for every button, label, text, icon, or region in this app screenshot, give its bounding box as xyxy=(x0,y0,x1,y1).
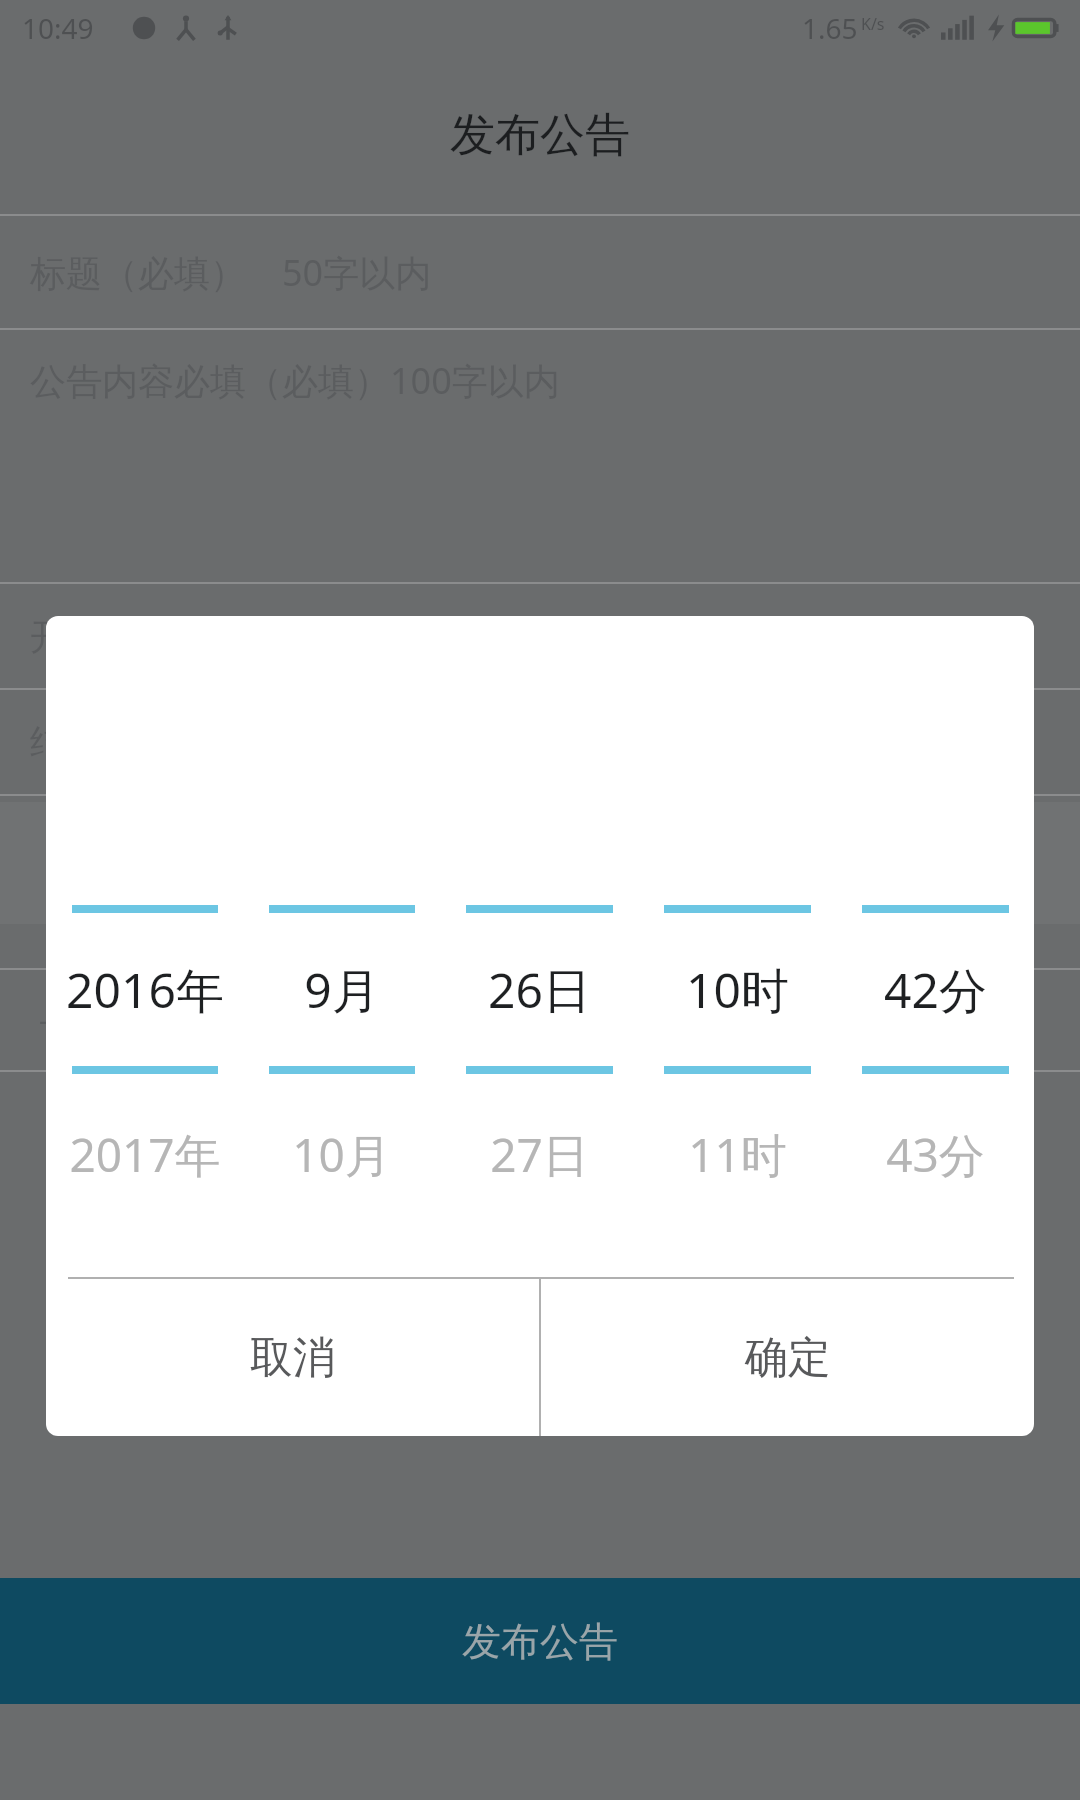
button[interactable]: 公司全部人员 xyxy=(241,1106,545,1160)
staticText: 自定义 xyxy=(687,1109,804,1158)
staticText: 9月 xyxy=(304,957,380,1023)
staticText: 10月 xyxy=(292,1123,391,1186)
button[interactable]: 10时 xyxy=(638,616,836,1277)
other: Messages xyxy=(130,14,158,42)
staticText: 接收人 xyxy=(78,1109,195,1158)
staticText: 发布公告 xyxy=(462,1617,618,1666)
button[interactable]: 2016年 xyxy=(46,616,243,1277)
staticText: 10时 xyxy=(686,957,789,1023)
button[interactable]: 确定 xyxy=(541,1279,1034,1436)
staticText: 取消 xyxy=(250,1331,336,1385)
button[interactable]: 取消 xyxy=(46,1279,539,1436)
staticText: 标题（必填） 50字以内 xyxy=(30,248,432,297)
staticText: 2016年 xyxy=(66,957,224,1023)
staticText: 27日 xyxy=(490,1123,589,1186)
staticText: 43分 xyxy=(886,1123,985,1186)
button[interactable]: 自定义 xyxy=(617,1106,804,1160)
staticText: 42分 xyxy=(884,957,987,1023)
staticText: 公告内容必填（必填）100字以内 xyxy=(30,356,560,405)
staticText: 公司全部人员 xyxy=(311,1109,545,1158)
staticText: － xyxy=(30,998,66,1043)
staticText: 确定 xyxy=(745,1331,831,1385)
button[interactable]: 9月 xyxy=(243,616,440,1277)
staticText: 11时 xyxy=(688,1123,787,1186)
staticText: 2017年 xyxy=(69,1123,221,1186)
staticText: K/s xyxy=(861,13,885,35)
button[interactable]: 26日 xyxy=(440,616,638,1277)
other: Wi-Fi xyxy=(898,12,930,44)
other: Accessibility xyxy=(172,14,200,42)
staticText: 26日 xyxy=(488,957,591,1023)
staticText: 10:49 xyxy=(22,9,94,47)
staticText: 1.65 xyxy=(802,9,858,47)
other: USB xyxy=(214,14,242,42)
staticText: 结 xyxy=(30,720,66,765)
button[interactable]: 发布公告 xyxy=(0,1578,1080,1704)
staticText: 开 xyxy=(30,614,66,659)
button[interactable]: 42分 xyxy=(836,616,1034,1277)
other: Signal xyxy=(941,14,977,42)
staticText: 发布公告 xyxy=(450,107,630,164)
other: Battery xyxy=(1012,14,1060,42)
